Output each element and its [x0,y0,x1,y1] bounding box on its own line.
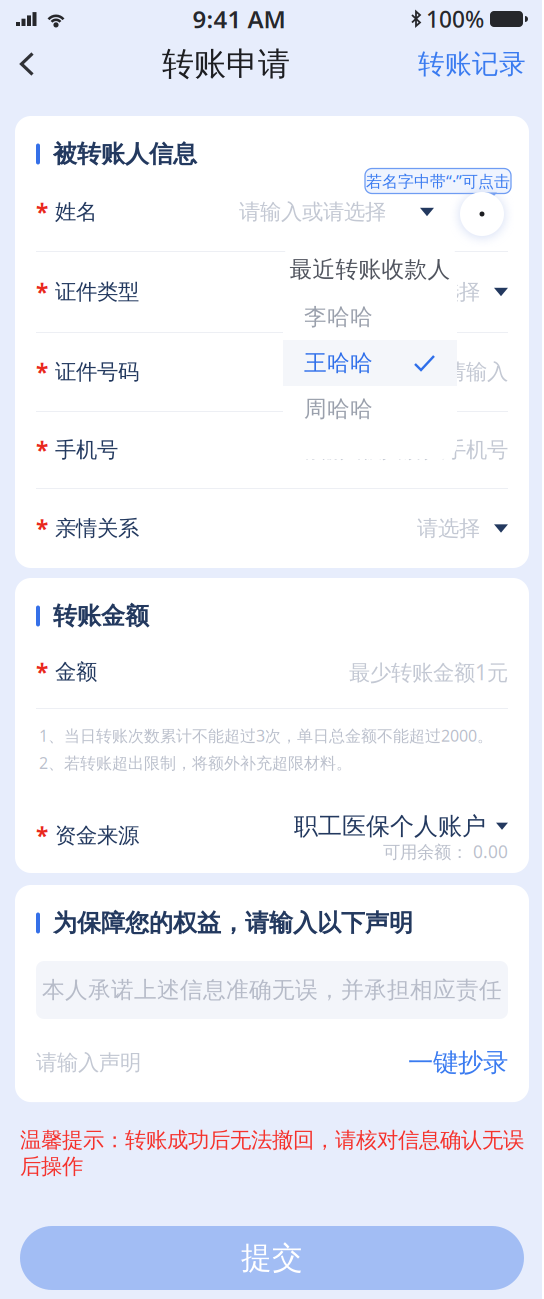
button[interactable]: * [36,252,508,332]
staticText: 可用余额： 0.00 [383,840,508,863]
staticText: * [36,820,48,851]
button[interactable]: 李哈哈 [283,294,457,340]
button[interactable]: * [36,198,508,226]
staticText: 温馨提示：转账成功后无法撤回，请核对信息确认无误后操作 [20,1127,524,1179]
staticText: 最近转账收款人 [289,256,450,283]
staticText: 周哈哈 [304,395,373,423]
button[interactable]: 返回 [0,40,48,88]
button[interactable]: * [36,811,508,867]
staticText: 金额 [55,659,97,685]
button[interactable]: 周哈哈 [283,386,457,432]
staticText: 亲情关系 [55,515,139,542]
staticText: 职工医保个人账户 [294,811,486,841]
staticText: 资金来源 [55,822,139,849]
staticText: * [36,435,48,465]
staticText: 9:41 AM [192,3,285,35]
staticText: * [36,277,48,307]
staticText: 一键抄录 [408,1047,508,1078]
button[interactable]: * [36,412,508,488]
staticText: 王哈哈 [304,349,373,377]
button[interactable]: 王哈哈 [283,340,457,386]
staticText: * [36,657,48,687]
button[interactable]: 选择名字中的点 [460,192,504,236]
staticText: 1、当日转账次数累计不能超过3次，单日总金额不能超过2000。 [39,725,493,746]
staticText: * [36,513,48,543]
staticText: 最少转账金额1元 [349,658,508,686]
staticText: 李哈哈 [304,303,373,331]
staticText: 转账申请 [162,44,290,84]
staticText: 证件类型 [55,279,139,305]
staticText: * [36,197,48,227]
button[interactable]: 一键抄录 [408,1047,508,1078]
staticText: 请选择 [417,279,480,305]
staticText: 被转账人信息 [53,139,197,169]
staticText: 转账记录 [418,48,526,80]
staticText: 请输入声明 [36,1049,141,1076]
staticText: 2、若转账超出限制，将额外补充超限材料。 [39,752,352,773]
button[interactable]: 提交 [20,1226,524,1290]
staticText: 转账金额 [53,601,149,631]
staticText: 请输入或请选择 [239,199,386,225]
button[interactable]: * [36,489,508,568]
staticText: 100% [426,4,484,34]
staticText: 证件号码 [55,359,139,385]
staticText: 请输入 [445,359,508,385]
staticText: 为保障您的权益，请输入以下声明 [53,908,413,938]
staticText: * [36,357,48,387]
staticText: 本人承诺上述信息准确无误，并承担相应责任 [42,976,502,1004]
staticText: 姓名 [55,199,97,225]
button[interactable]: 转账记录 [404,36,544,92]
staticText: 提交 [241,1239,303,1277]
staticText: 手机号 [55,437,118,463]
staticText: 若名字中带“·”可点击 [366,170,510,192]
button[interactable]: * [36,333,508,411]
staticText: 请选择 [417,515,480,542]
staticText: 请输入被共济人手机号 [298,437,508,463]
